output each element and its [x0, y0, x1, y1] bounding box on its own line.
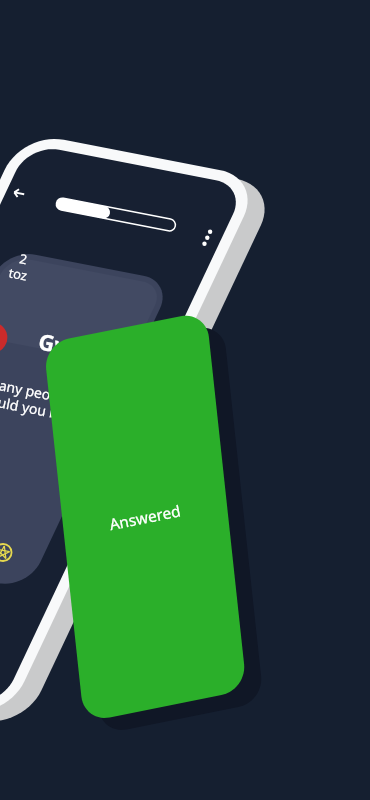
button[interactable]: Call answered: [0, 0, 370, 800]
